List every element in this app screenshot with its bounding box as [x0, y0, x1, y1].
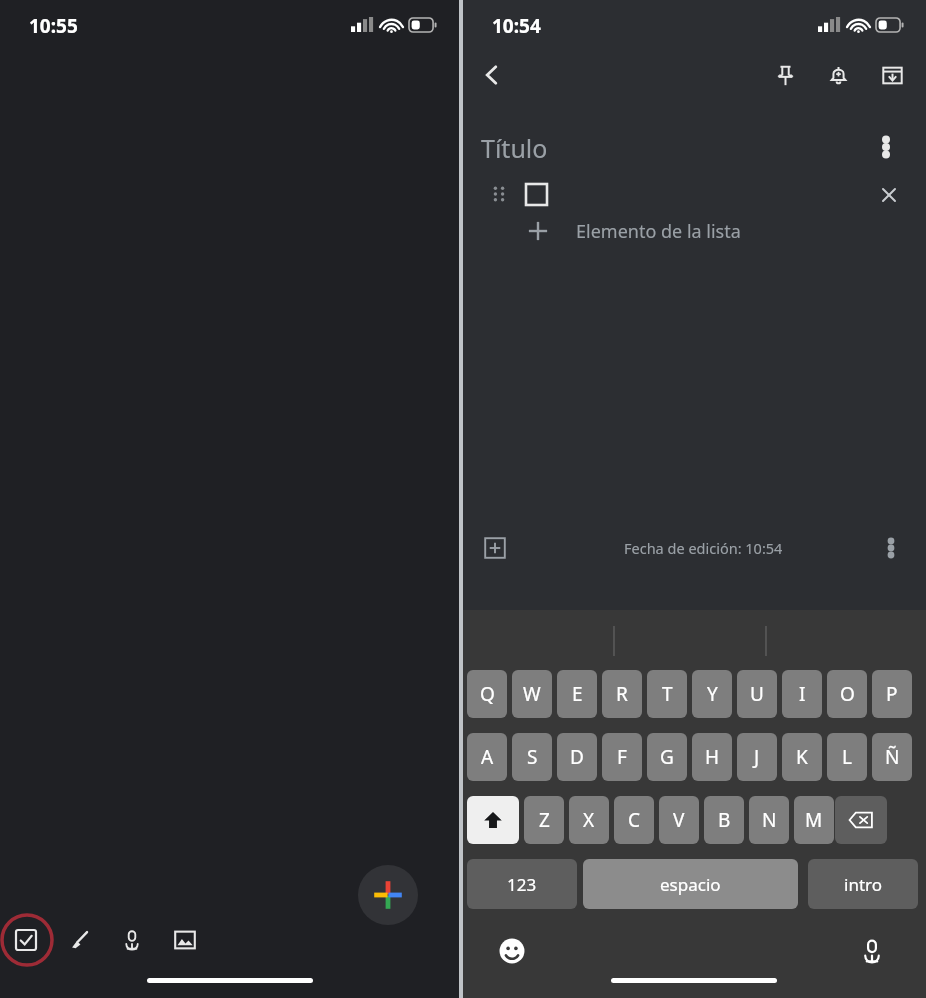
staticText: J — [754, 744, 760, 770]
button[interactable]: Archive — [873, 56, 911, 94]
button[interactable]: J — [737, 733, 777, 781]
staticText: 10:54 — [492, 13, 541, 39]
button[interactable]: New image note — [167, 922, 203, 958]
button[interactable]: L — [827, 733, 867, 781]
button[interactable]: Delete item — [481, 175, 909, 213]
button[interactable]: D — [557, 733, 597, 781]
button[interactable]: M — [794, 796, 834, 844]
staticText: intro — [844, 873, 882, 896]
staticText: W — [523, 681, 541, 707]
button[interactable]: O — [827, 670, 867, 718]
button[interactable]: K — [782, 733, 822, 781]
button[interactable]: A — [467, 733, 507, 781]
staticText: H — [705, 744, 720, 770]
staticText: L — [842, 744, 852, 770]
button[interactable]: S — [512, 733, 552, 781]
button[interactable]: E — [557, 670, 597, 718]
staticText: A — [481, 744, 494, 770]
staticText: F — [617, 744, 627, 770]
button[interactable]: espacio — [583, 859, 798, 909]
staticText: T — [662, 681, 673, 707]
button[interactable]: Back — [473, 56, 511, 94]
button[interactable]: Ñ — [872, 733, 912, 781]
staticText: espacio — [660, 873, 721, 896]
button[interactable]: U — [737, 670, 777, 718]
staticText: I — [799, 681, 806, 707]
staticText: Título — [481, 131, 548, 165]
button[interactable]: Emoji — [491, 930, 533, 972]
staticText: Y — [707, 681, 718, 707]
button[interactable]: New list — [8, 922, 44, 958]
button[interactable]: T — [647, 670, 687, 718]
button[interactable]: Pin — [766, 56, 804, 94]
button[interactable]: Add — [475, 528, 515, 568]
button[interactable]: F — [602, 733, 642, 781]
button[interactable]: B — [704, 796, 744, 844]
staticText: M — [805, 807, 823, 833]
staticText: U — [750, 681, 764, 707]
staticText: K — [796, 744, 808, 770]
staticText: V — [673, 807, 685, 833]
staticText: B — [718, 807, 731, 833]
button[interactable]: I — [782, 670, 822, 718]
button[interactable]: Z — [524, 796, 564, 844]
button[interactable]: New voice note — [114, 922, 150, 958]
button[interactable]: Y — [692, 670, 732, 718]
staticText: C — [628, 807, 641, 833]
staticText: S — [527, 744, 538, 770]
button[interactable]: Título — [481, 128, 841, 168]
staticText: Ñ — [885, 744, 900, 770]
staticText: 10:55 — [29, 13, 78, 39]
button[interactable]: V — [659, 796, 699, 844]
button[interactable]: More options — [865, 126, 907, 168]
staticText: D — [570, 744, 584, 770]
button[interactable]: Voice input — [851, 930, 893, 972]
staticText: O — [840, 681, 855, 707]
staticText: P — [886, 681, 898, 707]
button[interactable]: New drawing — [62, 922, 98, 958]
button[interactable]: H — [692, 733, 732, 781]
staticText: Elemento de la lista — [576, 219, 741, 244]
staticText: R — [616, 681, 628, 707]
button[interactable]: Shift — [467, 796, 519, 844]
staticText: Fecha de edición: 10:54 — [624, 538, 783, 558]
staticText: G — [660, 744, 674, 770]
button[interactable]: R — [602, 670, 642, 718]
button[interactable]: Delete item — [875, 181, 903, 209]
button[interactable]: Backspace — [835, 796, 887, 844]
button[interactable]: More note options — [871, 528, 911, 568]
button[interactable]: C — [614, 796, 654, 844]
button[interactable]: Elemento de la lista — [481, 212, 909, 250]
button[interactable]: intro — [808, 859, 918, 909]
button[interactable]: X — [569, 796, 609, 844]
staticText: Q — [480, 681, 495, 707]
button[interactable]: Reminder — [819, 56, 857, 94]
button[interactable]: N — [749, 796, 789, 844]
button[interactable]: 123 — [467, 859, 577, 909]
staticText: X — [583, 807, 595, 833]
button[interactable]: Q — [467, 670, 507, 718]
button[interactable]: P — [872, 670, 912, 718]
button[interactable]: G — [647, 733, 687, 781]
staticText: Z — [539, 807, 550, 833]
staticText: N — [762, 807, 777, 833]
button[interactable]: W — [512, 670, 552, 718]
button[interactable]: Create note — [358, 865, 418, 925]
staticText: E — [572, 681, 583, 707]
staticText: 123 — [507, 873, 537, 896]
